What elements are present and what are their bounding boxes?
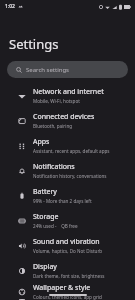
staticText: Mobile, Wi‑Fi, hotspot [33, 98, 80, 104]
staticText: Notification history, conversations [33, 173, 107, 179]
staticText: Sound and vibration [33, 237, 100, 247]
staticText: Assistant, recent apps, default apps [33, 148, 110, 154]
staticText: Apps [33, 137, 50, 147]
staticText: Display [33, 262, 57, 272]
staticText: Connected devices [33, 112, 95, 122]
button[interactable]: Notifications [0, 158, 135, 183]
staticText: Network and internet [33, 87, 104, 97]
staticText: Storage [33, 212, 59, 222]
button[interactable]: Search settings [7, 61, 128, 78]
staticText: Notifications [33, 162, 75, 172]
staticText: Settings [9, 35, 59, 53]
staticText: Colours, themed icons, app grid [33, 294, 102, 300]
staticText: Wallpaper & style [33, 283, 91, 293]
staticText: Search settings [26, 66, 69, 74]
button[interactable]: Network and internet [0, 83, 135, 108]
button[interactable]: Wallpaper & style [0, 283, 135, 300]
staticText: Volume, haptics, Do Not Disturb [33, 248, 103, 254]
button[interactable]: Storage [0, 208, 135, 233]
staticText: 24% used - QB free [33, 223, 78, 229]
button[interactable]: Display [0, 258, 135, 283]
staticText: 99% - More than 2 days left [33, 198, 92, 204]
staticText: Battery [33, 187, 57, 197]
button[interactable]: Battery [0, 183, 135, 208]
button[interactable]: Connected devices [0, 108, 135, 133]
button[interactable]: Apps [0, 133, 135, 158]
staticText: Dark theme, font size, brightness [33, 273, 105, 279]
staticText: 1:02 [5, 3, 15, 10]
button[interactable]: Sound and vibration [0, 233, 135, 258]
staticText: Bluetooth, pairing [33, 123, 73, 129]
